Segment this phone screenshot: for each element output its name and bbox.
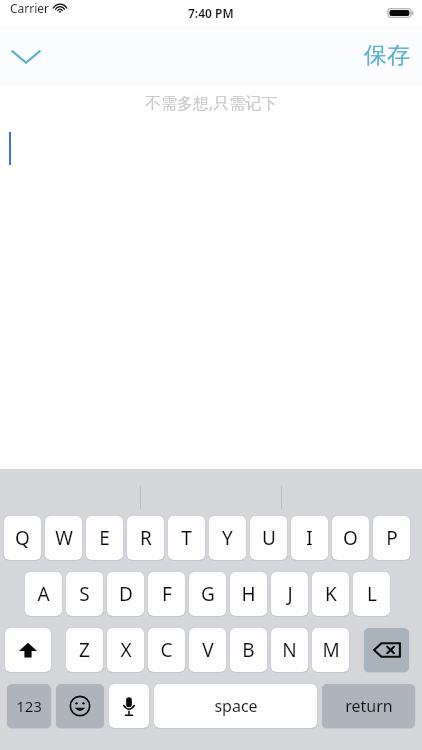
staticText: P	[386, 525, 398, 551]
button[interactable]: P	[373, 516, 410, 560]
staticText: H	[241, 581, 256, 607]
button[interactable]: Y	[209, 516, 246, 560]
staticText: D	[119, 581, 133, 607]
button[interactable]: return	[322, 684, 415, 728]
button[interactable]: H	[230, 572, 267, 616]
staticText: T	[181, 525, 192, 551]
button[interactable]: G	[189, 572, 226, 616]
button[interactable]: T	[168, 516, 205, 560]
staticText: R	[140, 525, 152, 551]
button[interactable]: L	[353, 572, 390, 616]
button[interactable]: Dictation	[109, 684, 149, 728]
staticText: 7:40 PM	[188, 5, 234, 21]
staticText: I	[306, 525, 313, 551]
button[interactable]: X	[107, 628, 144, 672]
staticText: 保存	[364, 41, 410, 70]
staticText: B	[242, 637, 255, 663]
button[interactable]: O	[332, 516, 369, 560]
staticText: W	[55, 525, 73, 551]
button[interactable]: space	[154, 684, 317, 728]
staticText: Q	[15, 525, 30, 551]
staticText: X	[120, 637, 132, 663]
button[interactable]: V	[189, 628, 226, 672]
staticText: 123	[16, 696, 42, 716]
staticText: L	[367, 581, 377, 607]
button[interactable]: Q	[4, 516, 41, 560]
button[interactable]: N	[271, 628, 308, 672]
button[interactable]: I	[291, 516, 328, 560]
button[interactable]: Backspace	[364, 628, 409, 672]
button[interactable]: 保存	[360, 37, 414, 74]
staticText: return	[345, 695, 393, 717]
staticText: 不需多想,只需记下	[145, 92, 278, 114]
button[interactable]: C	[148, 628, 185, 672]
staticText: F	[162, 581, 172, 607]
staticText: A	[37, 581, 50, 607]
button[interactable]: B	[230, 628, 267, 672]
button[interactable]: E	[86, 516, 123, 560]
staticText: J	[287, 581, 293, 607]
button[interactable]: Close	[4, 34, 48, 78]
staticText: Y	[222, 525, 233, 551]
button[interactable]: J	[271, 572, 308, 616]
staticText: U	[262, 525, 276, 551]
button[interactable]: A	[25, 572, 62, 616]
staticText: C	[160, 637, 173, 663]
staticText: N	[282, 637, 297, 663]
button[interactable]: U	[250, 516, 287, 560]
staticText: O	[343, 525, 358, 551]
staticText: E	[99, 525, 110, 551]
staticText: Z	[79, 637, 90, 663]
staticText: M	[322, 637, 340, 663]
staticText: space	[214, 695, 258, 717]
staticText: K	[325, 581, 337, 607]
button[interactable]: R	[127, 516, 164, 560]
button[interactable]: W	[45, 516, 82, 560]
button[interactable]: S	[66, 572, 103, 616]
button[interactable]: Z	[66, 628, 103, 672]
staticText: S	[79, 581, 90, 607]
button[interactable]: F	[148, 572, 185, 616]
staticText: G	[201, 581, 215, 607]
button[interactable]: D	[107, 572, 144, 616]
button[interactable]: K	[312, 572, 349, 616]
button[interactable]: M	[312, 628, 349, 672]
button[interactable]: Emoji	[56, 684, 104, 728]
button[interactable]: 123	[7, 684, 51, 728]
staticText: V	[202, 637, 214, 663]
staticText: Carrier	[10, 0, 50, 16]
button[interactable]: Shift	[5, 628, 51, 672]
